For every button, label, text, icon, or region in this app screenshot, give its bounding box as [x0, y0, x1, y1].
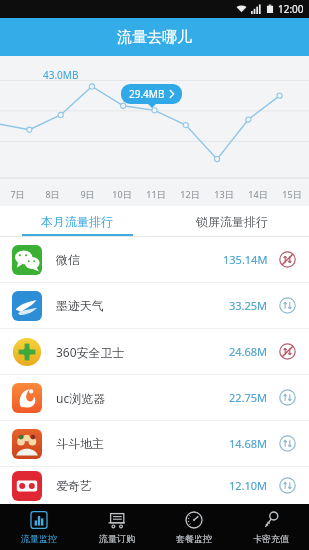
button[interactable]: Card recharge [232, 504, 309, 550]
other: Traffic monitor [29, 510, 49, 530]
staticText: 12.10M [229, 478, 268, 493]
button[interactable]: 锁屏流量排行 [154, 206, 309, 236]
staticText: 10日 [112, 188, 132, 200]
button[interactable]: 斗斗地主 [0, 421, 309, 466]
button[interactable]: 微信 [0, 237, 309, 282]
other: Traffic purchase [107, 510, 127, 530]
staticText: 14.68M [229, 436, 268, 451]
staticText: 9日 [80, 188, 95, 200]
staticText: 33.25M [229, 298, 268, 313]
staticText: 22.75M [229, 390, 268, 405]
button[interactable]: 墨迹天气 [0, 283, 309, 328]
staticText: 12日 [180, 188, 200, 200]
staticText: 43.0MB [43, 68, 79, 82]
button[interactable]: Blocked [278, 342, 297, 361]
staticText: 7日 [10, 188, 25, 200]
staticText: 本月流量排行 [41, 214, 113, 229]
staticText: 135.14M [223, 252, 268, 267]
button[interactable]: 爱奇艺 [0, 467, 309, 504]
button[interactable]: 本月流量排行 [0, 206, 154, 236]
button[interactable]: Allowed [278, 296, 297, 315]
button[interactable]: Traffic monitor [0, 504, 78, 550]
button[interactable]: Blocked [278, 250, 297, 269]
staticText: 15日 [282, 188, 302, 200]
button[interactable]: Allowed [278, 434, 297, 453]
button[interactable]: Allowed [278, 388, 297, 407]
staticText: 360安全卫士 [56, 344, 229, 360]
staticText: 卡密充值 [253, 533, 289, 544]
staticText: 流量去哪儿 [117, 28, 192, 47]
other: Plan monitor [184, 510, 204, 530]
staticText: 29.4MB [129, 87, 165, 101]
staticText: 墨迹天气 [56, 298, 229, 313]
staticText: 12:00 [278, 2, 304, 16]
button[interactable]: Traffic purchase [78, 504, 155, 550]
staticText: 斗斗地主 [56, 436, 229, 451]
staticText: 14日 [248, 188, 268, 200]
staticText: 微信 [56, 252, 223, 267]
staticText: 流量监控 [21, 533, 57, 544]
staticText: 24.68M [229, 344, 268, 359]
staticText: 爱奇艺 [56, 478, 229, 493]
button[interactable]: Allowed [278, 476, 297, 495]
button[interactable]: Plan monitor [155, 504, 232, 550]
button[interactable]: uc浏览器 [0, 375, 309, 420]
button[interactable]: 29.4MB [121, 84, 182, 104]
staticText: 锁屏流量排行 [196, 214, 268, 229]
staticText: 11日 [146, 188, 166, 200]
button[interactable]: 360安全卫士 [0, 329, 309, 374]
staticText: 13日 [214, 188, 234, 200]
other: Card recharge [261, 510, 281, 530]
staticText: 套餐监控 [176, 533, 212, 544]
staticText: 8日 [45, 188, 60, 200]
staticText: 流量订购 [99, 533, 135, 544]
staticText: uc浏览器 [56, 390, 229, 406]
